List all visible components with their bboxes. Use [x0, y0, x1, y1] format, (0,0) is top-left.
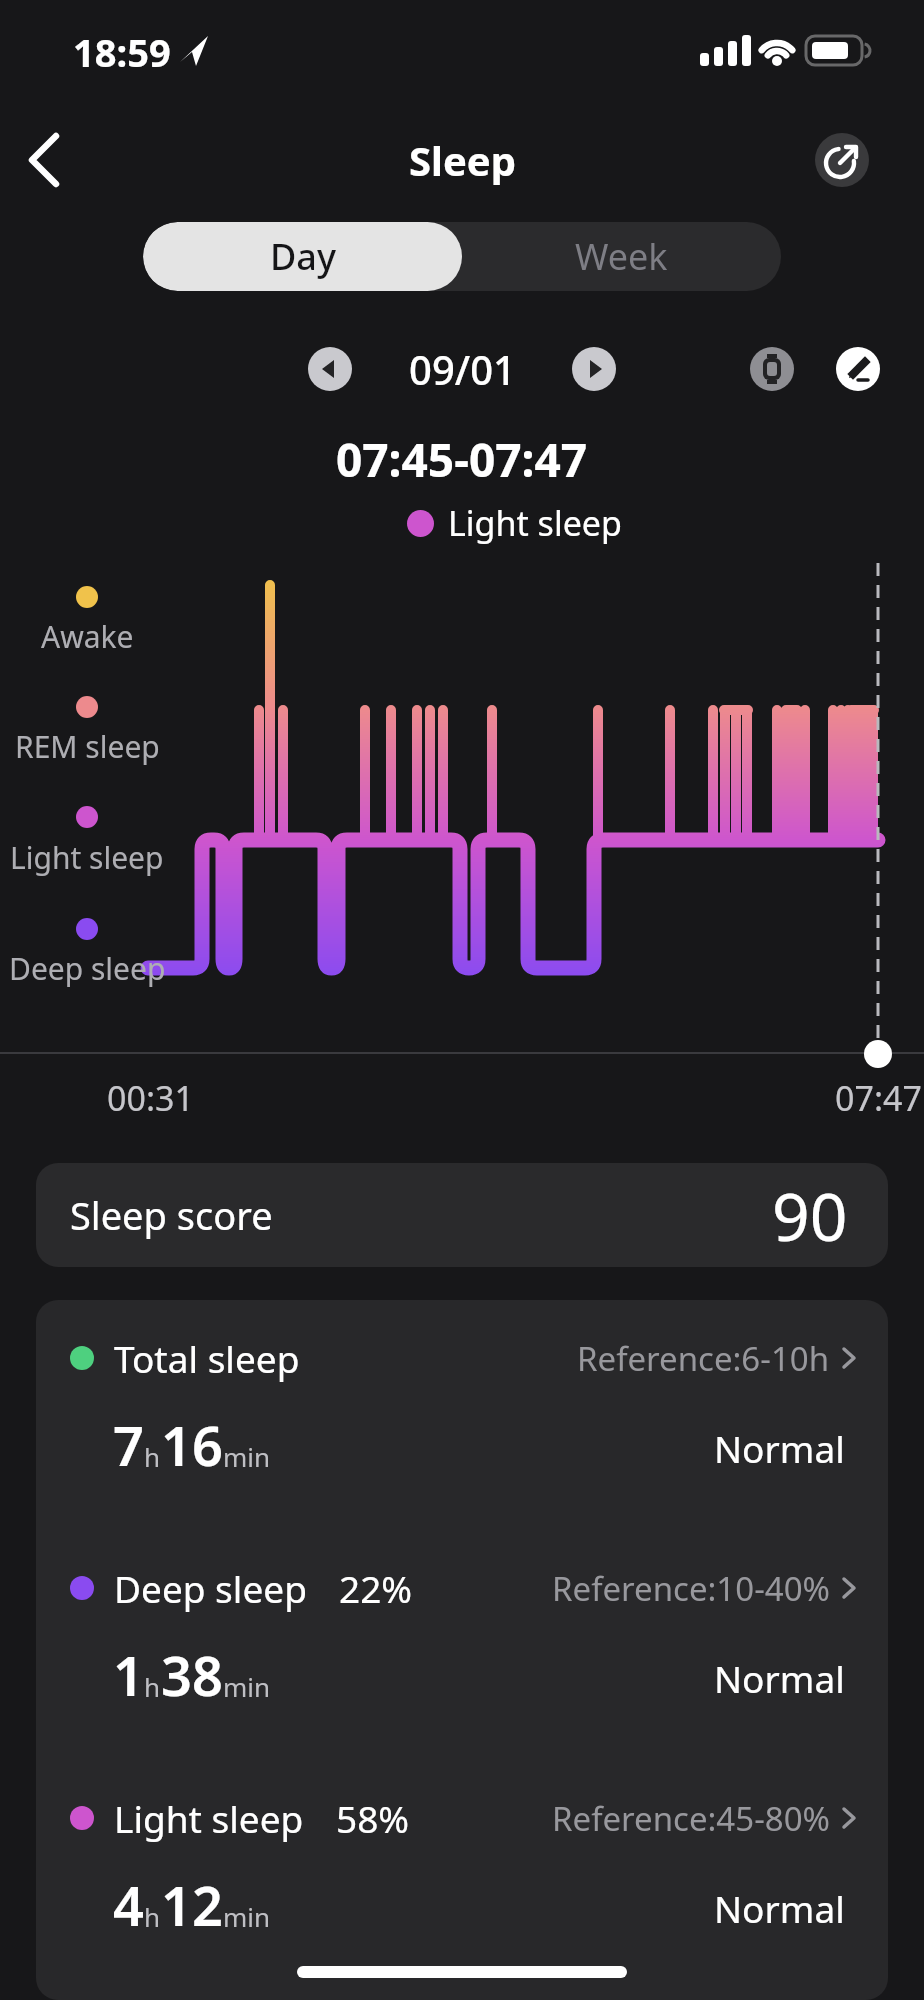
staticText: Total sleep — [114, 1333, 300, 1383]
staticText: Reference:45-80% — [552, 1796, 830, 1841]
staticText: Normal — [714, 1653, 845, 1703]
button[interactable]: Week — [462, 222, 781, 291]
button[interactable] — [16, 130, 76, 190]
staticText: 7 — [113, 1408, 144, 1482]
staticText: Normal — [714, 1423, 845, 1473]
staticText: Light sleep — [114, 1793, 304, 1843]
button[interactable] — [836, 347, 880, 391]
staticText: 16 — [161, 1408, 223, 1482]
staticText: Reference:10-40% — [552, 1566, 830, 1611]
staticText: h — [144, 1439, 161, 1474]
staticText: Sleep score — [70, 1189, 273, 1241]
staticText: Reference:6-10h — [577, 1336, 830, 1381]
staticText: Awake — [41, 616, 134, 657]
staticText: min — [223, 1899, 271, 1934]
staticText: 58% — [336, 1793, 410, 1843]
staticText: 12 — [161, 1868, 223, 1942]
staticText: 00:31 — [107, 1075, 194, 1121]
button[interactable] — [572, 347, 616, 391]
button[interactable]: Sleep score — [36, 1163, 888, 1267]
button[interactable] — [308, 347, 352, 391]
staticText: 22% — [339, 1563, 413, 1613]
staticText: Light sleep — [448, 500, 622, 546]
staticText: Light sleep — [10, 837, 164, 878]
staticText: min — [223, 1439, 271, 1474]
button[interactable]: Day — [143, 222, 462, 291]
staticText: 1 — [113, 1638, 144, 1712]
staticText: Week — [575, 232, 668, 281]
button[interactable]: Light sleep — [70, 1788, 860, 1848]
staticText: Sleep — [409, 133, 516, 187]
button[interactable]: Deep sleep — [70, 1558, 860, 1618]
staticText: h — [144, 1669, 161, 1704]
staticText: Day — [270, 232, 336, 281]
staticText: h — [144, 1899, 161, 1934]
staticText: 07:47 — [835, 1075, 922, 1121]
staticText: 18:59 — [73, 26, 171, 78]
button[interactable] — [750, 347, 794, 391]
staticText: 09/01 — [409, 342, 516, 396]
staticText: 90 — [772, 1170, 848, 1260]
button[interactable] — [815, 133, 869, 187]
staticText: Deep sleep — [114, 1563, 307, 1613]
staticText: 38 — [161, 1638, 223, 1712]
staticText: REM sleep — [15, 726, 160, 767]
staticText: Normal — [714, 1883, 845, 1933]
staticText: 07:45-07:47 — [336, 428, 588, 491]
staticText: min — [223, 1669, 271, 1704]
staticText: Deep sleep — [9, 948, 166, 989]
staticText: 4 — [113, 1868, 144, 1942]
button[interactable]: Total sleep — [70, 1328, 860, 1388]
